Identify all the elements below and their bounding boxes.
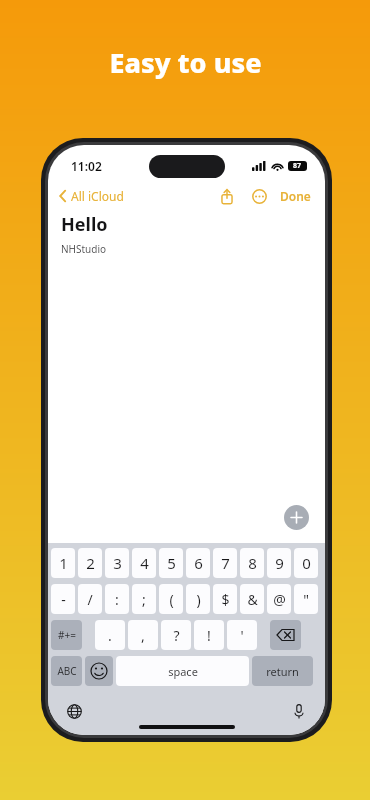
staticText: & — [247, 590, 258, 609]
staticText: All iCloud — [71, 188, 124, 204]
button[interactable]: 8 — [240, 548, 264, 578]
staticText: ? — [173, 626, 180, 645]
button[interactable]: @ — [267, 584, 291, 614]
button[interactable]: Change keyboard — [62, 699, 86, 723]
staticText: ) — [196, 590, 201, 609]
staticText: : — [115, 590, 119, 609]
button[interactable]: - — [51, 584, 75, 614]
button[interactable]: space — [116, 656, 249, 686]
staticText: 3 — [113, 553, 122, 573]
staticText: 6 — [194, 553, 203, 573]
button[interactable]: Delete — [270, 620, 301, 650]
button[interactable]: All iCloud — [58, 188, 124, 204]
button[interactable]: 5 — [159, 548, 183, 578]
staticText: space — [168, 664, 198, 679]
staticText: - — [61, 590, 66, 609]
button[interactable]: . — [95, 620, 125, 650]
button[interactable]: ABC — [51, 656, 82, 686]
button[interactable]: ; — [132, 584, 156, 614]
staticText: ; — [142, 590, 146, 609]
button[interactable]: 4 — [132, 548, 156, 578]
staticText: ( — [169, 590, 174, 609]
staticText: @ — [273, 590, 286, 609]
button[interactable]: & — [240, 584, 264, 614]
button[interactable]: #+= — [51, 620, 82, 650]
button[interactable]: 3 — [105, 548, 129, 578]
staticText: 2 — [86, 553, 95, 573]
button[interactable]: 0 — [294, 548, 318, 578]
staticText: 87 — [293, 161, 302, 171]
button[interactable]: ' — [227, 620, 257, 650]
button[interactable]: return — [252, 656, 313, 686]
button[interactable]: ! — [194, 620, 224, 650]
button[interactable]: More options — [248, 185, 270, 207]
button[interactable]: " — [294, 584, 318, 614]
button[interactable]: 9 — [267, 548, 291, 578]
staticText: $ — [221, 590, 230, 609]
staticText: Easy to use — [109, 44, 262, 81]
staticText: / — [87, 590, 93, 609]
button[interactable]: Add — [284, 505, 309, 530]
button[interactable]: 2 — [78, 548, 102, 578]
button[interactable]: Emoji — [85, 656, 113, 686]
staticText: Hello — [61, 212, 108, 237]
staticText: ' — [240, 626, 244, 645]
button[interactable]: Dictate — [287, 699, 311, 723]
staticText: . — [108, 626, 112, 645]
staticText: NHStudio — [61, 242, 107, 256]
staticText: 5 — [167, 553, 176, 573]
button[interactable]: : — [105, 584, 129, 614]
staticText: return — [266, 664, 299, 679]
staticText: 7 — [221, 553, 230, 573]
staticText: 4 — [140, 553, 149, 573]
staticText: ! — [207, 626, 211, 645]
staticText: " — [303, 590, 309, 609]
staticText: 9 — [275, 553, 284, 573]
staticText: 1 — [59, 553, 68, 573]
staticText: ABC — [57, 664, 77, 678]
button[interactable]: 7 — [213, 548, 237, 578]
button[interactable]: Share — [216, 185, 238, 207]
button[interactable]: , — [128, 620, 158, 650]
staticText: , — [141, 626, 145, 645]
button[interactable]: 6 — [186, 548, 210, 578]
staticText: 8 — [248, 553, 257, 573]
button[interactable]: Done — [278, 186, 313, 206]
button[interactable]: $ — [213, 584, 237, 614]
button[interactable]: ( — [159, 584, 183, 614]
staticText: 0 — [302, 553, 311, 573]
staticText: Done — [280, 188, 311, 204]
staticText: #+= — [58, 628, 76, 642]
button[interactable]: / — [78, 584, 102, 614]
button[interactable]: ) — [186, 584, 210, 614]
staticText: 11:02 — [71, 158, 102, 174]
button[interactable]: ? — [161, 620, 191, 650]
button[interactable]: 1 — [51, 548, 75, 578]
